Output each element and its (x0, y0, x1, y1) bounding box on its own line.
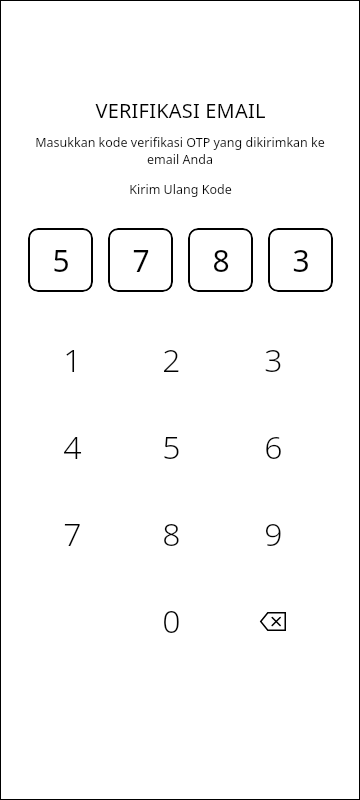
staticText: 6 (264, 425, 283, 469)
button[interactable]: 1 (28, 320, 116, 400)
staticText: 0 (162, 599, 181, 643)
staticText: 7 (63, 512, 82, 556)
staticText: Masukkan kode verifikasi OTP yang dikiri… (34, 134, 326, 168)
staticText: Kirim Ulang Kode (129, 181, 232, 198)
button[interactable]: 3 (229, 320, 317, 400)
button[interactable]: 7 (108, 228, 173, 292)
button[interactable]: 6 (229, 407, 317, 487)
button[interactable]: 4 (28, 407, 116, 487)
staticText: 7 (132, 240, 150, 281)
button[interactable]: Backspace (229, 581, 317, 661)
button[interactable]: 7 (28, 494, 116, 574)
button[interactable]: 3 (268, 228, 333, 292)
button[interactable]: 8 (188, 228, 253, 292)
staticText: 3 (264, 338, 283, 382)
staticText: 8 (162, 512, 181, 556)
staticText: 5 (52, 240, 70, 281)
staticText: 8 (212, 240, 230, 281)
staticText: 4 (63, 425, 82, 469)
button[interactable]: 2 (127, 320, 215, 400)
button[interactable]: 0 (127, 581, 215, 661)
staticText: 3 (292, 240, 310, 281)
button[interactable]: Kirim Ulang Kode (121, 179, 240, 200)
button[interactable]: 9 (229, 494, 317, 574)
staticText: 1 (63, 338, 82, 382)
button[interactable]: 8 (127, 494, 215, 574)
button[interactable]: 5 (28, 228, 93, 292)
staticText: 9 (264, 512, 283, 556)
button[interactable]: 5 (127, 407, 215, 487)
staticText: VERIFIKASI EMAIL (95, 97, 266, 124)
staticText: 5 (162, 425, 181, 469)
staticText: 2 (162, 338, 181, 382)
